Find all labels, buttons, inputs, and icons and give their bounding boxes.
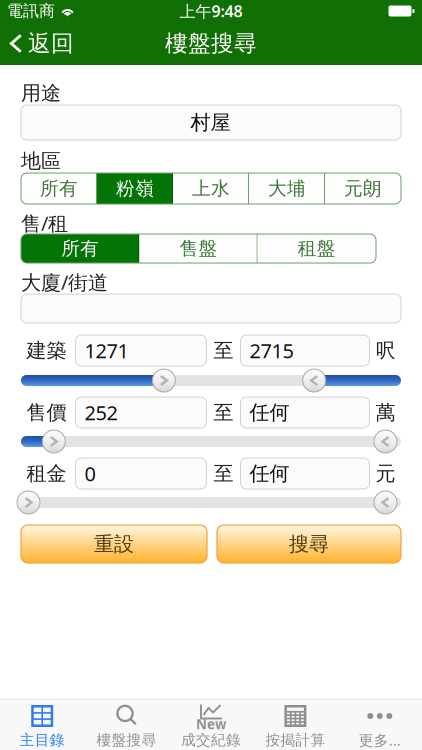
- button[interactable]: 按揭計算: [253, 699, 338, 750]
- staticText: 成交紀錄: [181, 731, 241, 749]
- staticText: 租金: [26, 461, 66, 486]
- staticText: 至: [213, 338, 233, 363]
- staticText: 電訊商: [7, 1, 55, 21]
- staticText: 上午9:48: [179, 0, 242, 22]
- button[interactable]: 更多...: [338, 699, 422, 750]
- button[interactable]: 搜尋: [217, 525, 401, 563]
- button[interactable]: 樓盤搜尋: [84, 699, 169, 750]
- button[interactable]: 上水: [173, 173, 249, 204]
- staticText: 樓盤搜尋: [165, 30, 257, 57]
- button[interactable]: 元朗: [325, 173, 401, 204]
- staticText: 所有: [40, 177, 78, 200]
- staticText: 2715: [249, 337, 293, 364]
- button[interactable]: 所有: [21, 234, 139, 263]
- staticText: 重設: [94, 532, 134, 556]
- staticText: 所有: [61, 237, 99, 260]
- button[interactable]: 返回: [0, 22, 84, 65]
- staticText: 至: [213, 461, 233, 486]
- button[interactable]: 售盤: [139, 234, 258, 263]
- staticText: 更多...: [359, 730, 401, 750]
- button[interactable]: 重設: [21, 525, 207, 563]
- staticText: 粉嶺: [116, 177, 154, 200]
- staticText: 元: [375, 461, 395, 486]
- staticText: 返回: [28, 30, 74, 57]
- staticText: 任何: [249, 400, 289, 425]
- button[interactable]: New: [169, 699, 253, 750]
- staticText: 大廈/街道: [21, 269, 108, 295]
- staticText: 用途: [21, 81, 61, 105]
- staticText: 售盤: [179, 237, 217, 260]
- staticText: 呎: [375, 338, 395, 363]
- staticText: 售價: [26, 400, 66, 425]
- button[interactable]: 所有: [21, 173, 97, 204]
- staticText: 主目錄: [20, 731, 65, 749]
- button[interactable]: 主目錄: [0, 699, 84, 750]
- staticText: 樓盤搜尋: [97, 731, 157, 749]
- staticText: 任何: [249, 461, 289, 486]
- staticText: 地區: [21, 149, 61, 173]
- staticText: 建築: [26, 338, 66, 363]
- staticText: 按揭計算: [265, 731, 325, 749]
- staticText: 搜尋: [289, 532, 329, 556]
- staticText: 1271: [84, 337, 128, 364]
- staticText: 元朗: [344, 177, 382, 200]
- staticText: 上水: [192, 177, 230, 200]
- button[interactable]: 租盤: [258, 234, 376, 263]
- staticText: 0: [84, 460, 95, 487]
- staticText: 萬: [375, 400, 395, 425]
- button[interactable]: 粉嶺: [97, 173, 173, 204]
- staticText: 252: [84, 399, 117, 426]
- staticText: 村屋: [190, 110, 230, 135]
- staticText: 售/租: [21, 210, 68, 236]
- button[interactable]: 大埔: [249, 173, 325, 204]
- staticText: 大埔: [268, 177, 306, 200]
- staticText: New: [196, 715, 226, 733]
- staticText: 租盤: [298, 237, 336, 260]
- staticText: 至: [213, 400, 233, 425]
